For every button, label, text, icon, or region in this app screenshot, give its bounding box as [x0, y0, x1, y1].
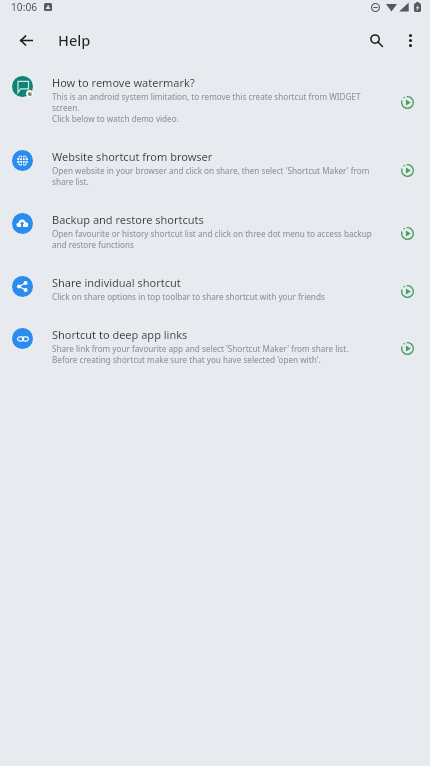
staticText: Help	[58, 30, 91, 50]
button[interactable]: Back	[6, 21, 46, 59]
staticText: 10:06	[11, 0, 38, 14]
button[interactable]: Search	[356, 21, 396, 59]
button[interactable]: How to remove watermark?	[0, 64, 430, 137]
staticText: Click on share options in top toolbar to…	[52, 292, 325, 303]
staticText: Share individual shortcut	[52, 276, 181, 290]
staticText: Share link from your favourite app and s…	[52, 344, 374, 366]
button[interactable]: More options	[396, 26, 424, 54]
button[interactable]: Share individual shortcut	[0, 264, 430, 315]
button[interactable]: Play demo video	[396, 280, 418, 302]
staticText: Open favourite or history shortcut list …	[52, 229, 374, 251]
staticText: This is an android system limitation, to…	[52, 92, 374, 125]
button[interactable]: Play demo video	[396, 91, 418, 113]
staticText: Shortcut to deep app links	[52, 328, 188, 342]
button[interactable]: Play demo video	[396, 337, 418, 359]
staticText: How to remove watermark?	[52, 76, 195, 90]
button[interactable]: Shortcut to deep app links	[0, 316, 430, 378]
button[interactable]: Play demo video	[396, 222, 418, 244]
button[interactable]: Website shortcut from browser	[0, 138, 430, 200]
button[interactable]: Backup and restore shortcuts	[0, 201, 430, 263]
staticText: Website shortcut from browser	[52, 150, 213, 164]
button[interactable]: Play demo video	[396, 159, 418, 181]
staticText: Backup and restore shortcuts	[52, 213, 204, 227]
staticText: Open website in your browser and click o…	[52, 166, 374, 188]
